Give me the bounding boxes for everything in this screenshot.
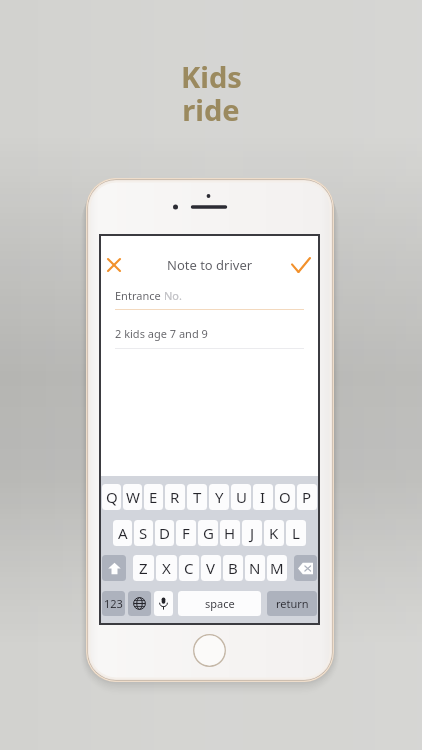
staticText: J [250, 523, 255, 543]
button[interactable]: Y [209, 484, 229, 510]
button[interactable]: N [245, 555, 265, 581]
staticText: X [162, 558, 171, 578]
button[interactable]: B [223, 555, 243, 581]
button[interactable]: K [264, 520, 284, 546]
button[interactable]: 123 [102, 591, 125, 616]
button[interactable]: Q [102, 484, 121, 510]
button[interactable]: A [113, 520, 132, 546]
button[interactable]: U [231, 484, 251, 510]
staticText: 123 [104, 596, 123, 611]
staticText: N [249, 558, 261, 578]
staticText: O [279, 487, 291, 507]
button[interactable]: H [220, 520, 240, 546]
button[interactable]: Dictation [154, 591, 173, 616]
button[interactable]: space [178, 591, 261, 616]
button[interactable]: I [253, 484, 273, 510]
button[interactable]: Entrance [101, 284, 318, 310]
button[interactable]: Cancel [100, 251, 128, 279]
staticText: I [260, 487, 266, 507]
staticText: P [302, 487, 312, 507]
button[interactable]: W [123, 484, 142, 510]
button[interactable]: F [176, 520, 196, 546]
staticText: A [118, 523, 128, 543]
staticText: Entrance [115, 288, 164, 303]
staticText: Note to driver [167, 256, 253, 274]
button[interactable]: P [297, 484, 317, 510]
button[interactable]: E [144, 484, 163, 510]
staticText: H [224, 523, 236, 543]
staticText: 2 kids age 7 and 9 [115, 326, 208, 341]
staticText: Kids [181, 57, 242, 96]
staticText: C [184, 558, 194, 578]
button[interactable]: C [179, 555, 199, 581]
staticText: D [159, 523, 170, 543]
staticText: K [269, 523, 279, 543]
button[interactable]: Backspace [294, 555, 317, 581]
staticText: G [203, 523, 214, 543]
staticText: Z [139, 558, 148, 578]
staticText: U [236, 487, 247, 507]
button[interactable]: T [187, 484, 207, 510]
staticText: F [182, 523, 190, 543]
staticText: B [228, 558, 238, 578]
button[interactable]: X [156, 555, 177, 581]
button[interactable]: R [165, 484, 185, 510]
button[interactable]: J [242, 520, 262, 546]
button[interactable]: D [155, 520, 174, 546]
button[interactable]: Shift [102, 555, 126, 581]
button[interactable]: V [201, 555, 221, 581]
button[interactable]: Next keyboard [128, 591, 151, 616]
staticText: space [205, 596, 235, 611]
staticText: T [193, 487, 202, 507]
staticText: V [206, 558, 216, 578]
button[interactable]: 2 kids age 7 and 9 [101, 310, 318, 349]
button[interactable]: M [267, 555, 287, 581]
staticText: L [292, 523, 300, 543]
button[interactable]: Z [133, 555, 154, 581]
staticText: ride [182, 90, 240, 129]
staticText: E [149, 487, 158, 507]
staticText: M [270, 558, 284, 578]
button[interactable]: return [267, 591, 317, 616]
staticText: W [126, 487, 140, 507]
staticText: Q [106, 487, 118, 507]
button[interactable]: G [198, 520, 218, 546]
staticText: Y [215, 487, 224, 507]
button[interactable]: Save note [287, 251, 315, 279]
button[interactable]: O [275, 484, 295, 510]
staticText: S [139, 523, 148, 543]
staticText: No. [164, 288, 182, 303]
staticText: return [276, 596, 309, 611]
button[interactable]: L [286, 520, 306, 546]
staticText: R [170, 487, 180, 507]
button[interactable]: S [134, 520, 153, 546]
